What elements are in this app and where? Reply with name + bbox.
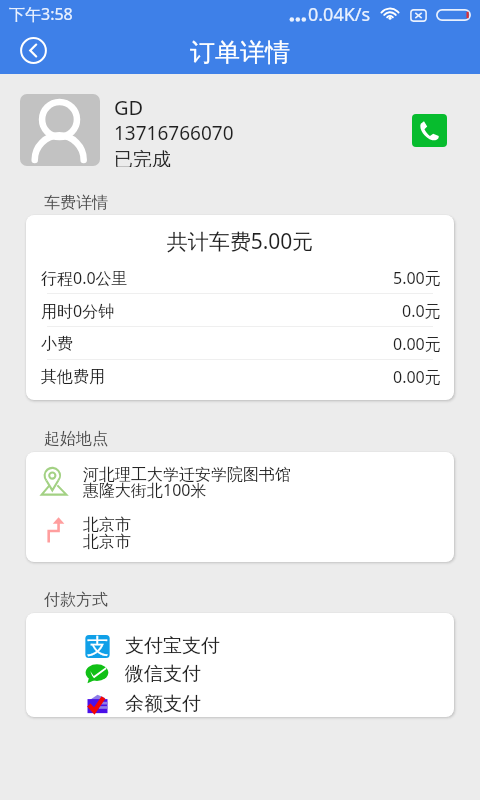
button[interactable]: 余额支付 (84, 687, 454, 717)
staticText: 13716766070 (114, 120, 234, 146)
button[interactable]: 微信支付 (84, 657, 454, 691)
staticText: 河北理工大学迁安学院图书馆 (83, 465, 291, 485)
staticText: 车费详情 (44, 193, 108, 213)
button[interactable]: 支 (84, 629, 454, 663)
staticText: 其他费用 (41, 367, 105, 387)
staticText: 起始地点 (44, 429, 108, 449)
staticText: 小费 (41, 334, 73, 354)
button[interactable]: Call (412, 114, 447, 147)
staticText: 用时0分钟 (41, 300, 115, 322)
staticText: 已完成 (114, 148, 171, 167)
button[interactable]: Back (20, 37, 47, 64)
staticText: 行程0.0公里 (41, 267, 128, 289)
staticText: 微信支付 (125, 662, 201, 686)
staticText: 付款方式 (44, 590, 108, 610)
staticText: 支 (87, 633, 109, 660)
staticText: 惠隆大街北100米 (83, 479, 207, 501)
staticText: 北京市 (83, 515, 131, 535)
staticText: 北京市 (83, 532, 131, 552)
staticText: 下午3:58 (9, 3, 73, 25)
staticText: 订单详情 (190, 37, 290, 68)
staticText: 支付宝支付 (125, 634, 220, 658)
staticText: 0.0元 (402, 300, 441, 322)
staticText: 0.00元 (393, 333, 441, 355)
staticText: 余额支付 (125, 692, 201, 716)
staticText: 5.00元 (393, 267, 441, 289)
staticText: 0.04K/s (308, 2, 371, 27)
staticText: GD (114, 94, 144, 121)
staticText: 共计车费5.00元 (26, 227, 454, 256)
staticText: 0.00元 (393, 366, 441, 388)
